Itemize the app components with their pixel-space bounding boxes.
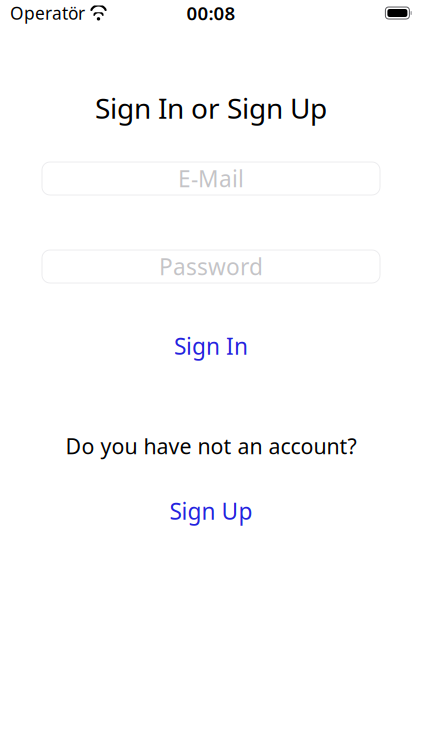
staticText: Password: [159, 251, 263, 281]
button[interactable]: E-Mail: [42, 162, 380, 195]
staticText: Do you have not an account?: [65, 432, 356, 460]
staticText: Sign Up: [169, 496, 252, 526]
staticText: 00:08: [186, 1, 235, 25]
staticText: Sign In or Sign Up: [95, 89, 327, 127]
button[interactable]: Password: [42, 250, 380, 283]
staticText: E-Mail: [178, 163, 244, 193]
staticText: Operatör: [10, 1, 85, 24]
staticText: Sign In: [174, 331, 248, 361]
button[interactable]: Sign Up: [0, 499, 422, 523]
button[interactable]: Sign In: [0, 334, 422, 358]
